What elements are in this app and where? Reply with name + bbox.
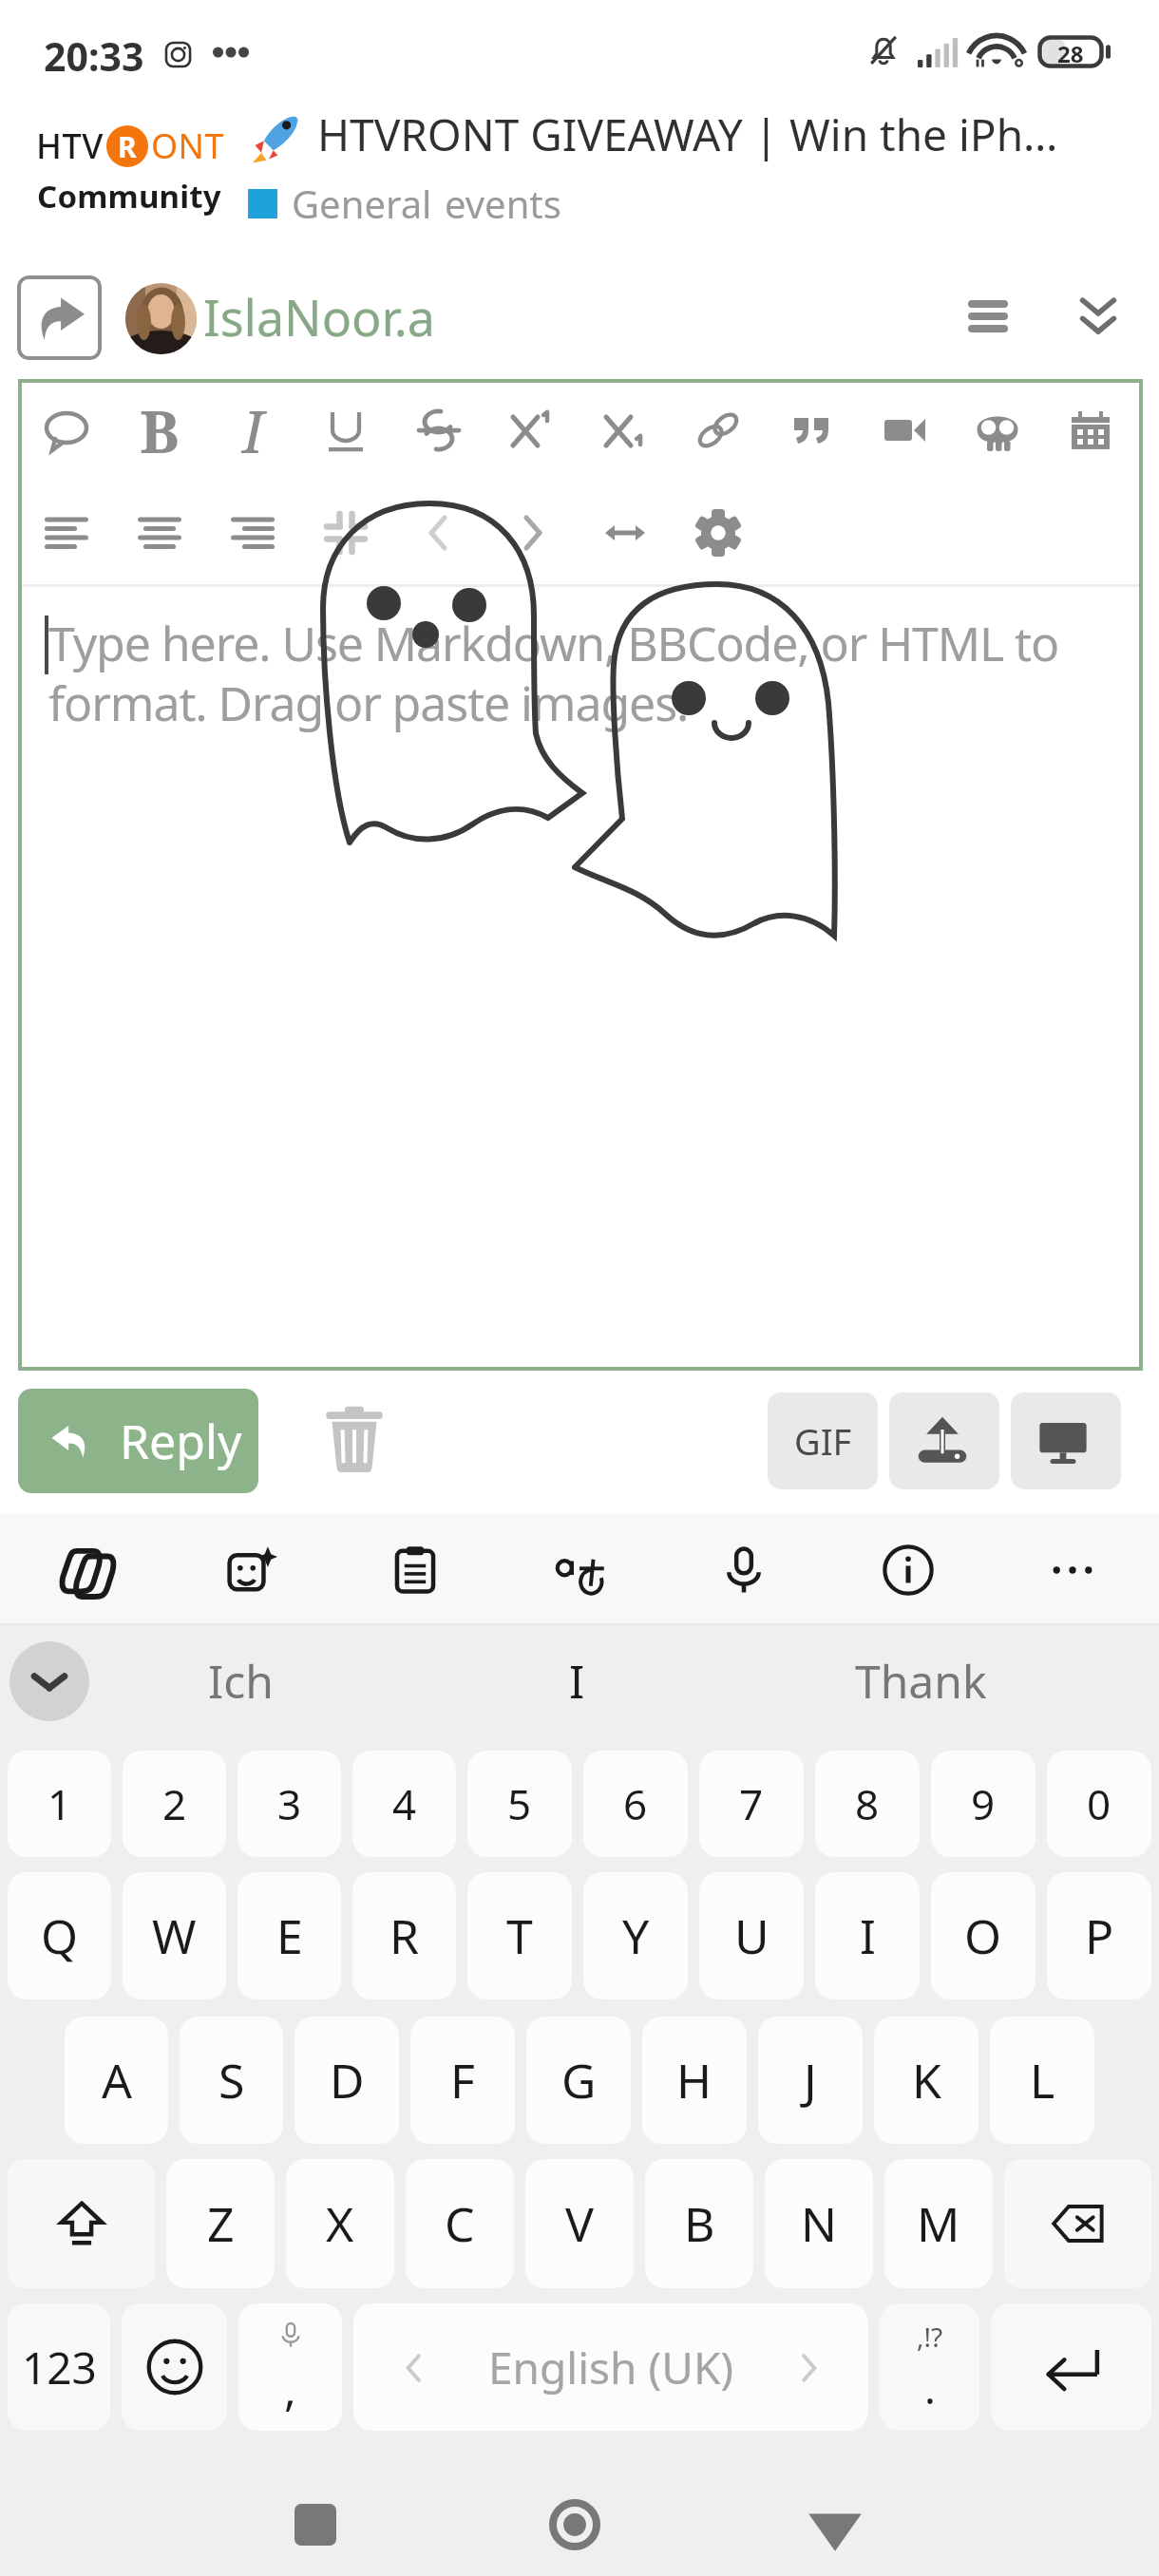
button[interactable]: Align right (211, 491, 294, 575)
button[interactable]: Comment (25, 388, 108, 472)
button[interactable]: Align left (25, 491, 108, 575)
button[interactable]: Menu (946, 275, 1030, 358)
button[interactable]: Delete (306, 1391, 403, 1487)
button[interactable]: Enter (991, 2303, 1151, 2431)
staticText: 0 (1087, 1775, 1111, 1832)
button[interactable]: Z (166, 2159, 275, 2288)
button[interactable]: Undo (397, 491, 481, 575)
button[interactable]: Screen (1011, 1392, 1121, 1489)
button[interactable]: I (211, 388, 294, 472)
button[interactable]: 3 (237, 1751, 341, 1857)
button[interactable]: F (410, 2017, 515, 2144)
button[interactable]: 4 (352, 1751, 456, 1857)
button[interactable]: Voice (701, 1527, 787, 1613)
button[interactable]: GIF (768, 1392, 878, 1489)
staticText: J (804, 2048, 817, 2112)
button[interactable]: Collapse (304, 491, 388, 575)
button[interactable]: Redo (490, 491, 574, 575)
button[interactable]: I (815, 1872, 920, 1999)
button[interactable]: N (765, 2159, 873, 2288)
button[interactable]: Thank (788, 1625, 1054, 1736)
button[interactable]: Settings (676, 491, 760, 575)
button[interactable]: S (180, 2017, 283, 2144)
button[interactable]: , (238, 2303, 342, 2431)
button[interactable]: O (931, 1872, 1035, 1999)
button[interactable]: H (642, 2017, 747, 2144)
button[interactable]: Resize (583, 491, 667, 575)
button[interactable]: English (UK) (353, 2303, 868, 2431)
button[interactable]: Q (8, 1872, 111, 1999)
button[interactable]: Y (583, 1872, 688, 1999)
button[interactable]: Hide keyboard (9, 1641, 89, 1721)
button[interactable]: 5 (467, 1751, 572, 1857)
button[interactable]: Emoji (956, 388, 1039, 472)
button[interactable] (125, 283, 197, 354)
button[interactable]: Back (788, 2477, 883, 2572)
button[interactable]: IslaNoor.a (203, 283, 435, 350)
button[interactable]: Link (676, 388, 760, 472)
button[interactable]: Clipboard (372, 1527, 458, 1613)
button[interactable]: 8 (815, 1751, 920, 1857)
button[interactable]: Upload (889, 1392, 999, 1489)
button[interactable]: A (65, 2017, 168, 2144)
button[interactable]: Collapse (1056, 275, 1140, 358)
button[interactable]: Calendar (1049, 388, 1132, 472)
button[interactable]: Quote (769, 388, 853, 472)
button[interactable]: ,!? (880, 2303, 979, 2431)
button[interactable]: 9 (931, 1751, 1035, 1857)
staticText: Y (622, 1904, 650, 1968)
button[interactable]: Recent apps (268, 2477, 363, 2572)
button[interactable]: B (118, 388, 201, 472)
button[interactable]: Subscript (583, 388, 667, 472)
button[interactable]: 0 (1047, 1751, 1151, 1857)
button[interactable]: 2 (123, 1751, 226, 1857)
button[interactable]: J (758, 2017, 863, 2144)
button[interactable]: Emoji (122, 2303, 227, 2431)
button[interactable]: Info (865, 1527, 951, 1613)
button[interactable]: 1 (8, 1751, 111, 1857)
button[interactable]: Ich (107, 1625, 373, 1736)
button[interactable]: M (884, 2159, 993, 2288)
button[interactable]: Reply (18, 1389, 258, 1493)
staticText: I (242, 390, 264, 470)
button[interactable]: L (990, 2017, 1094, 2144)
staticText: Community (37, 175, 221, 218)
staticText: C (445, 2191, 475, 2256)
staticText: Ich (208, 1650, 274, 1712)
button[interactable]: C (406, 2159, 514, 2288)
button[interactable]: 123 (8, 2303, 110, 2431)
button[interactable]: Home (527, 2477, 622, 2572)
button[interactable]: D (294, 2017, 399, 2144)
button[interactable]: Strikethrough (397, 388, 481, 472)
button[interactable]: Align centre (118, 491, 201, 575)
button[interactable]: Superscript (490, 388, 574, 472)
staticText: B (684, 2191, 715, 2256)
staticText: W (152, 1904, 197, 1968)
button[interactable]: X (286, 2159, 394, 2288)
button[interactable]: Sticker (44, 1527, 129, 1613)
button[interactable]: W (123, 1872, 226, 1999)
button[interactable]: Shift (8, 2159, 155, 2288)
button[interactable]: P (1047, 1872, 1151, 1999)
button[interactable]: U (699, 1872, 804, 1999)
button[interactable]: I (444, 1625, 710, 1736)
staticText: HTV (36, 123, 104, 169)
staticText: S (218, 2048, 245, 2112)
button[interactable]: E (237, 1872, 341, 1999)
button[interactable]: K (874, 2017, 978, 2144)
button[interactable]: Video (863, 388, 946, 472)
button[interactable]: V (525, 2159, 634, 2288)
button[interactable]: Share (17, 275, 102, 360)
button[interactable]: G (526, 2017, 631, 2144)
button[interactable]: 6 (583, 1751, 688, 1857)
button[interactable]: B (645, 2159, 753, 2288)
button[interactable]: Emoji sticker (208, 1527, 294, 1613)
button[interactable]: T (467, 1872, 572, 1999)
staticText: 5 (507, 1775, 532, 1832)
button[interactable]: Underline (304, 388, 388, 472)
button[interactable]: Translate (537, 1527, 622, 1613)
button[interactable]: Backspace (1004, 2159, 1151, 2288)
button[interactable]: 7 (699, 1751, 804, 1857)
button[interactable]: R (352, 1872, 456, 1999)
button[interactable]: More (1030, 1527, 1115, 1613)
